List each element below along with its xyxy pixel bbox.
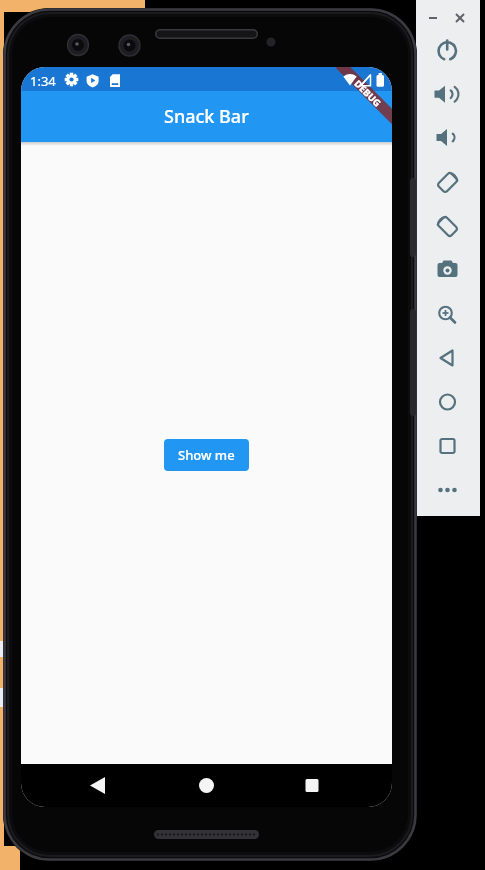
button[interactable]: [432, 298, 464, 330]
button[interactable]: [21, 764, 144, 807]
staticText: Snack Bar: [164, 104, 249, 129]
button[interactable]: [432, 430, 464, 462]
button[interactable]: [432, 386, 464, 418]
button[interactable]: [268, 764, 392, 807]
button[interactable]: [432, 474, 464, 506]
button[interactable]: [432, 342, 464, 374]
staticText: Show me: [178, 446, 235, 464]
staticText: 1:34: [30, 72, 56, 90]
button[interactable]: [432, 253, 464, 285]
button[interactable]: [432, 166, 464, 198]
button[interactable]: [432, 79, 464, 111]
button[interactable]: [432, 123, 464, 155]
staticText: DEBUG: [353, 77, 384, 108]
button[interactable]: [144, 764, 268, 807]
button[interactable]: Show me: [164, 439, 249, 471]
button[interactable]: [432, 36, 464, 68]
button[interactable]: [432, 211, 464, 243]
